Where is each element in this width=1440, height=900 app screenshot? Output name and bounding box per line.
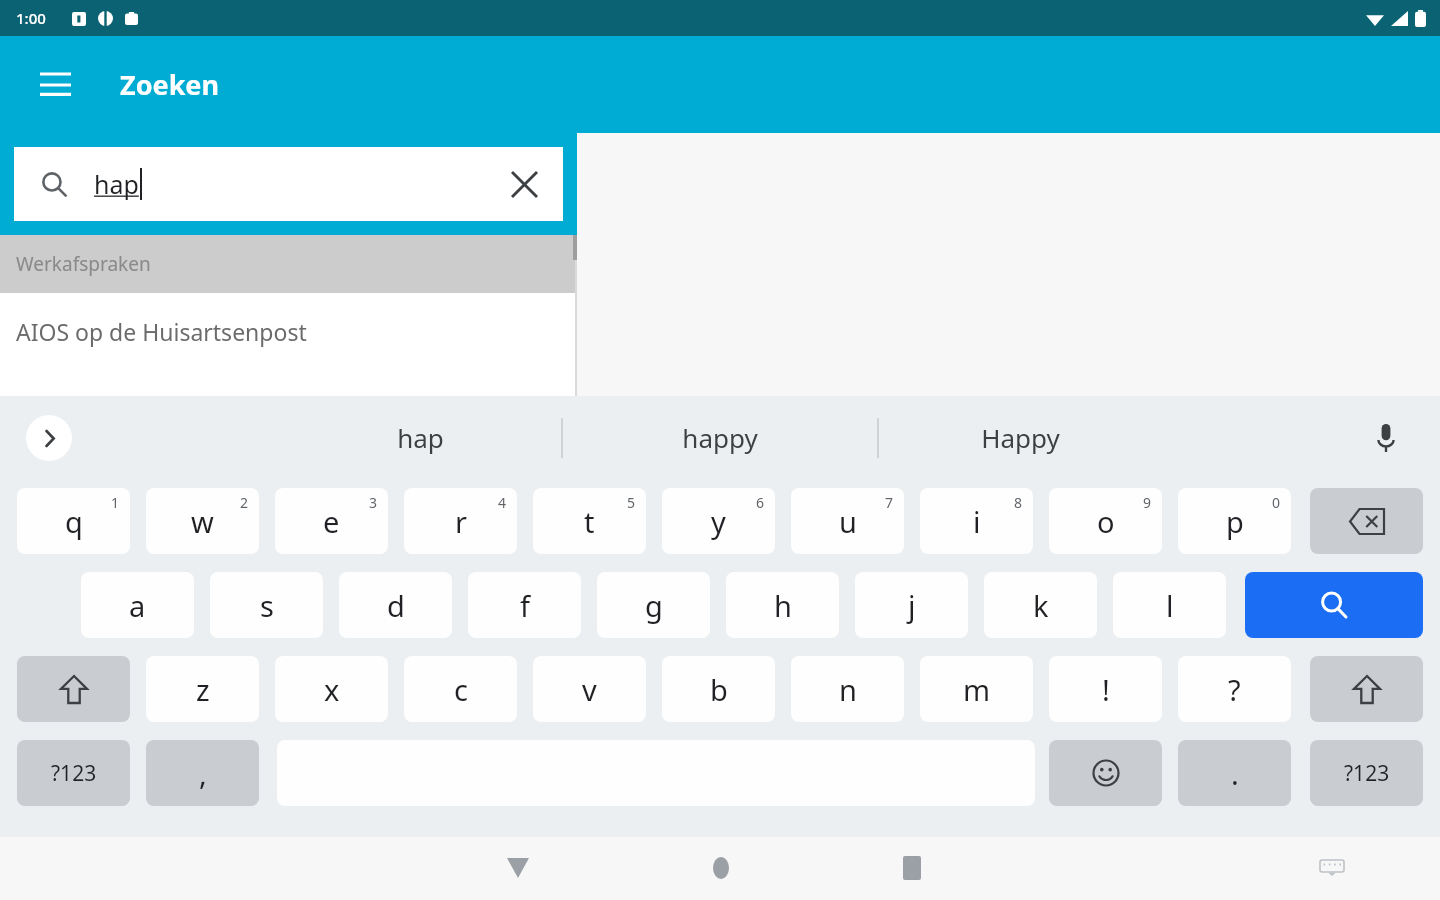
staticText: i: [973, 502, 981, 541]
button[interactable]: Shift: [1310, 656, 1423, 722]
button[interactable]: ?123: [1310, 740, 1423, 806]
staticText: 9: [1143, 493, 1152, 512]
staticText: y: [711, 502, 726, 541]
button[interactable]: h: [726, 572, 839, 638]
button[interactable]: i: [920, 488, 1033, 554]
button[interactable]: a: [81, 572, 194, 638]
button[interactable]: z: [146, 656, 259, 722]
staticText: hap: [397, 420, 444, 455]
staticText: p: [1226, 502, 1244, 541]
staticText: u: [839, 502, 857, 541]
staticText: v: [582, 670, 597, 709]
button[interactable]: hap: [14, 147, 563, 221]
staticText: 6: [756, 493, 765, 512]
button[interactable]: l: [1113, 572, 1226, 638]
staticText: hap: [94, 167, 139, 201]
button[interactable]: Emoji: [1049, 740, 1162, 806]
button[interactable]: o: [1049, 488, 1162, 554]
button[interactable]: c: [404, 656, 517, 722]
button[interactable]: e: [275, 488, 388, 554]
staticText: 1:00: [16, 8, 46, 28]
button[interactable]: m: [920, 656, 1033, 722]
staticText: 5: [627, 493, 636, 512]
button[interactable]: Voice input: [1362, 414, 1410, 462]
button[interactable]: b: [662, 656, 775, 722]
button[interactable]: Back: [490, 840, 546, 896]
staticText: .: [1231, 754, 1239, 793]
button[interactable]: y: [662, 488, 775, 554]
button[interactable]: Switch keyboard: [1308, 844, 1356, 892]
button[interactable]: ?123: [17, 740, 130, 806]
staticText: t: [584, 502, 595, 541]
button[interactable]: hap: [280, 396, 560, 479]
staticText: ?123: [51, 759, 97, 788]
staticText: AIOS op de Huisartsenpost: [16, 316, 307, 347]
button[interactable]: happy: [580, 396, 860, 479]
button[interactable]: Recent apps: [884, 840, 940, 896]
button[interactable]: q: [17, 488, 130, 554]
staticText: Happy: [981, 420, 1060, 455]
staticText: ,: [199, 754, 207, 793]
button[interactable]: ,: [146, 740, 259, 806]
staticText: ?123: [1344, 759, 1390, 788]
button[interactable]: p: [1178, 488, 1291, 554]
staticText: r: [455, 502, 467, 541]
button[interactable]: Shift: [17, 656, 130, 722]
staticText: d: [387, 586, 405, 625]
staticText: q: [65, 502, 83, 541]
staticText: !: [1102, 670, 1110, 709]
button[interactable]: Happy: [880, 396, 1160, 479]
staticText: ?: [1228, 670, 1241, 709]
button[interactable]: Search: [1245, 572, 1423, 638]
staticText: e: [323, 502, 340, 541]
button[interactable]: Home: [693, 840, 749, 896]
staticText: m: [963, 670, 991, 709]
staticText: w: [191, 502, 214, 541]
button[interactable]: !: [1049, 656, 1162, 722]
button[interactable]: AIOS op de Huisartsenpost: [0, 293, 577, 396]
staticText: n: [839, 670, 857, 709]
button[interactable]: t: [533, 488, 646, 554]
button[interactable]: s: [210, 572, 323, 638]
staticText: o: [1097, 502, 1115, 541]
button[interactable]: v: [533, 656, 646, 722]
staticText: c: [454, 670, 468, 709]
staticText: 8: [1014, 493, 1023, 512]
staticText: Zoeken: [120, 66, 220, 103]
button[interactable]: Clear search: [485, 147, 563, 221]
button[interactable]: More suggestions: [26, 415, 72, 461]
button[interactable]: f: [468, 572, 581, 638]
button[interactable]: Backspace: [1310, 488, 1423, 554]
button[interactable]: x: [275, 656, 388, 722]
staticText: 0: [1272, 493, 1281, 512]
button[interactable]: .: [1178, 740, 1291, 806]
staticText: 2: [240, 493, 249, 512]
staticText: 7: [885, 493, 894, 512]
button[interactable]: ?: [1178, 656, 1291, 722]
button[interactable]: k: [984, 572, 1097, 638]
staticText: a: [129, 586, 146, 625]
staticText: z: [196, 670, 210, 709]
staticText: f: [520, 586, 530, 625]
staticText: x: [324, 670, 340, 709]
button[interactable]: g: [597, 572, 710, 638]
button[interactable]: r: [404, 488, 517, 554]
button[interactable]: j: [855, 572, 968, 638]
staticText: j: [908, 586, 916, 625]
button[interactable]: Open navigation menu: [24, 54, 86, 116]
staticText: 1: [111, 493, 120, 512]
staticText: h: [774, 586, 792, 625]
button[interactable]: d: [339, 572, 452, 638]
staticText: happy: [682, 420, 758, 455]
button[interactable]: w: [146, 488, 259, 554]
staticText: 4: [498, 493, 507, 512]
staticText: g: [645, 586, 663, 625]
staticText: 3: [369, 493, 378, 512]
staticText: k: [1033, 586, 1049, 625]
staticText: s: [260, 586, 274, 625]
button[interactable]: n: [791, 656, 904, 722]
staticText: b: [710, 670, 728, 709]
staticText: l: [1166, 586, 1174, 625]
button[interactable]: u: [791, 488, 904, 554]
